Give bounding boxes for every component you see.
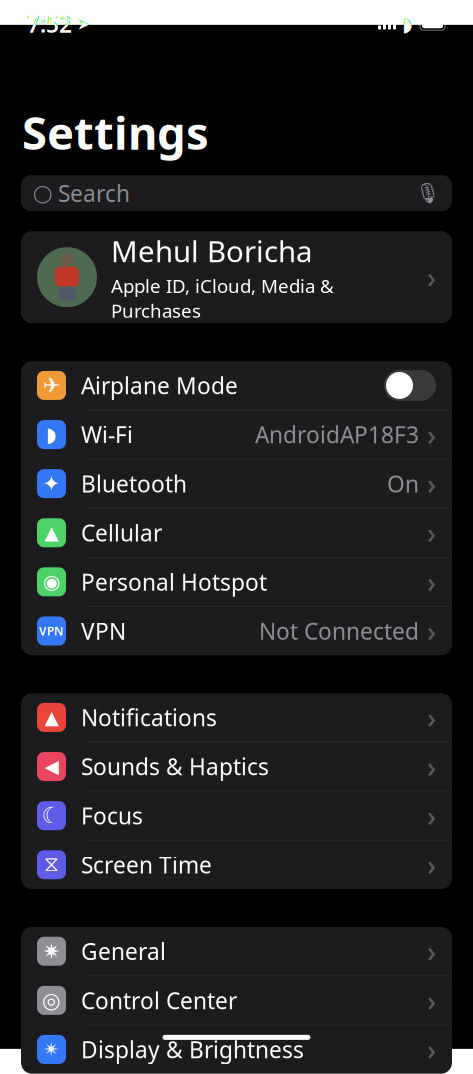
staticText: ›	[427, 797, 436, 834]
staticText: ›	[427, 514, 436, 551]
staticText: ◉	[43, 570, 60, 593]
staticText: ›	[427, 982, 436, 1019]
staticText: ◗	[46, 423, 57, 446]
button[interactable]: ✴	[21, 1025, 452, 1074]
staticText: ✴	[43, 1038, 60, 1061]
button[interactable]: ✈	[21, 361, 452, 410]
staticText: Sounds & Haptics	[81, 751, 269, 782]
button[interactable]: ◎	[21, 976, 452, 1025]
staticText: ⧖	[44, 854, 59, 875]
button[interactable]: ⧖	[21, 840, 452, 889]
staticText: ☾	[41, 803, 61, 828]
button[interactable]: ◀	[21, 742, 452, 791]
staticText: Search	[58, 178, 130, 208]
button[interactable]: ✦	[21, 459, 452, 508]
staticText: Airplane Mode	[81, 370, 238, 400]
staticText: ›	[427, 612, 436, 650]
staticText: ›	[427, 563, 436, 600]
staticText: 7:52	[27, 9, 72, 39]
button[interactable]: ◉	[21, 558, 452, 606]
staticText: Settings	[22, 102, 209, 162]
staticText: ›	[427, 259, 436, 296]
staticText: ◀	[44, 756, 58, 777]
staticText: VPN	[81, 616, 126, 646]
staticText: Cellular	[81, 518, 162, 548]
staticText: ›	[427, 416, 436, 453]
staticText: 🎙	[415, 182, 440, 205]
staticText: Personal Hotspot	[81, 567, 267, 597]
staticText: ›	[427, 846, 436, 883]
staticText: Display & Brightness	[81, 1034, 304, 1064]
button[interactable]: ✷	[21, 927, 452, 975]
button[interactable]: ▲	[21, 693, 452, 742]
staticText: ▲	[44, 522, 58, 543]
staticText: ✦	[42, 471, 60, 496]
button[interactable]: Mehul Boricha	[21, 231, 452, 323]
staticText: Wi-Fi	[81, 419, 133, 450]
staticText: ▲	[44, 707, 58, 728]
staticText: Bluetooth	[81, 469, 187, 499]
button[interactable]: VPN	[21, 607, 452, 655]
staticText: AndroidAP18F3	[255, 419, 419, 450]
staticText: ›	[427, 1031, 436, 1068]
staticText: ›	[427, 748, 436, 785]
staticText: Control Center	[81, 985, 237, 1015]
staticText: Notifications	[81, 702, 217, 732]
staticText: ›	[427, 465, 436, 502]
staticText: VPN	[39, 623, 64, 639]
staticText: ◯	[33, 183, 52, 203]
staticText: ›	[427, 933, 436, 970]
staticText: Focus	[81, 801, 143, 831]
staticText: ◎	[42, 988, 61, 1012]
staticText: Apple ID, iCloud, Media & Purchases	[111, 273, 334, 323]
button[interactable]: ◯	[21, 175, 452, 211]
button[interactable]: ☾	[21, 791, 452, 840]
staticText: Screen Time	[81, 850, 212, 880]
staticText: ›	[427, 699, 436, 736]
button[interactable]: ▲	[21, 508, 452, 557]
staticText: ✷	[42, 939, 60, 963]
staticText: Mehul Boricha	[111, 231, 312, 270]
staticText: ◗	[402, 13, 413, 35]
staticText: General	[81, 936, 166, 966]
staticText: ➤	[77, 15, 90, 33]
button[interactable]: ◗	[21, 410, 452, 459]
staticText: Not Connected	[259, 616, 419, 646]
staticText: ✈	[42, 373, 60, 397]
staticText: On	[387, 469, 419, 499]
